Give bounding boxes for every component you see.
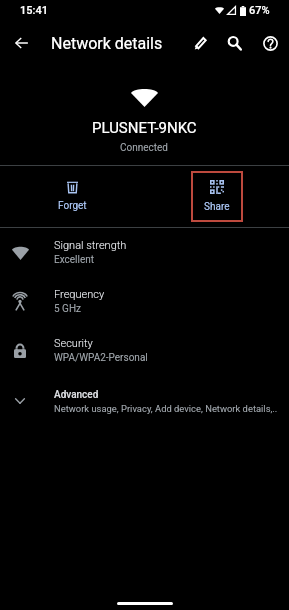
staticText: Network details — [51, 34, 163, 53]
staticText: Excellent — [54, 254, 95, 266]
staticText: Share — [204, 201, 230, 213]
staticText: 5 GHz — [54, 303, 82, 315]
button[interactable]: Security — [0, 326, 289, 375]
staticText: Frequency — [54, 288, 105, 301]
button[interactable]: Edit — [186, 29, 214, 57]
button[interactable]: Advanced — [0, 375, 289, 427]
button[interactable]: Signal strength — [0, 228, 289, 277]
button[interactable]: Frequency — [0, 277, 289, 326]
staticText: Advanced — [54, 389, 99, 401]
button[interactable]: Search — [220, 29, 248, 57]
staticText: Network usage, Privacy, Add device, Netw… — [54, 403, 278, 414]
staticText: Connected — [120, 142, 169, 154]
button[interactable]: Navigate up — [7, 29, 35, 57]
button[interactable]: Help — [256, 29, 284, 57]
staticText: Signal strength — [54, 239, 127, 252]
staticText: PLUSNET-9NKC — [92, 119, 197, 137]
staticText: Forget — [58, 200, 87, 212]
staticText: Security — [54, 337, 93, 350]
staticText: 67% — [249, 4, 270, 17]
button[interactable]: Forget — [0, 166, 144, 227]
staticText: 15:41 — [20, 4, 48, 17]
staticText: WPA/WPA2-Personal — [54, 352, 148, 364]
button[interactable]: Share — [191, 171, 243, 222]
